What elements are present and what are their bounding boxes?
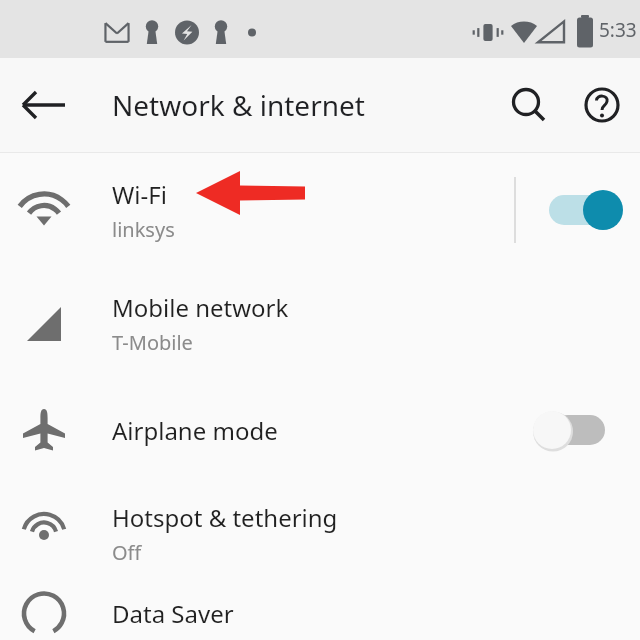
staticText: Network & internet — [112, 86, 365, 124]
button[interactable]: Airplane mode off — [538, 402, 624, 458]
staticText: 5:33 — [599, 17, 637, 43]
button[interactable]: Wi-Fi — [0, 153, 640, 267]
button[interactable]: Hotspot & tethering — [0, 480, 640, 587]
button[interactable]: Help — [574, 77, 630, 133]
button[interactable]: Data Saver — [0, 587, 640, 640]
staticText: Mobile network — [112, 291, 289, 324]
staticText: T-Mobile — [112, 329, 193, 356]
button[interactable]: Airplane mode — [0, 380, 640, 480]
staticText: Off — [112, 539, 142, 566]
button[interactable]: Search — [500, 77, 556, 133]
button[interactable]: Back — [16, 77, 72, 133]
button[interactable]: Mobile network — [0, 267, 640, 380]
staticText: Data Saver — [112, 597, 234, 630]
staticText: Airplane mode — [112, 414, 278, 447]
staticText: Wi-Fi — [112, 178, 167, 211]
staticText: Hotspot & tethering — [112, 501, 338, 534]
staticText: linksys — [112, 216, 175, 243]
button[interactable]: Wi-Fi on — [538, 182, 624, 238]
